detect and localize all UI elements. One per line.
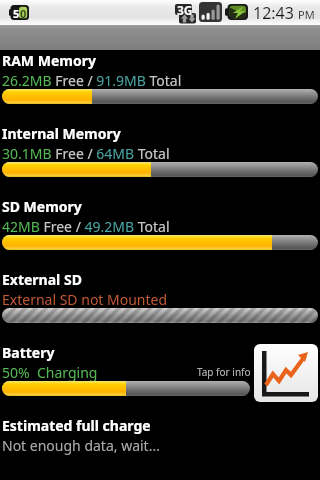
staticText: Battery <box>2 343 55 362</box>
staticText: Tap for info <box>197 365 251 379</box>
staticText: SD Memory <box>2 197 82 216</box>
staticText: 50% Charging <box>2 363 98 382</box>
staticText: 42MB Free / 49.2MB Total <box>2 217 170 236</box>
staticText: 5 <box>13 6 20 21</box>
staticText: Internal Memory <box>2 124 121 143</box>
staticText: 3G <box>177 2 193 18</box>
staticText: Not enough data, wait... <box>2 436 160 455</box>
button[interactable] <box>0 344 252 417</box>
staticText: 12:43 <box>253 2 294 24</box>
staticText: External SD not Mounted <box>2 290 168 309</box>
staticText: External SD <box>2 270 82 289</box>
staticText: Estimated full charge <box>2 416 151 435</box>
staticText: PM <box>298 7 315 22</box>
button[interactable] <box>0 125 320 198</box>
staticText: 26.2MB Free / 91.9MB Total <box>2 71 182 90</box>
staticText: RAM Memory <box>2 51 96 70</box>
button[interactable]: Battery history chart <box>254 344 318 402</box>
staticText: 30.1MB Free / 64MB Total <box>2 144 170 163</box>
button[interactable] <box>0 52 320 125</box>
button[interactable] <box>0 417 320 457</box>
button[interactable] <box>0 198 320 271</box>
staticText: 0 <box>20 6 27 21</box>
button[interactable] <box>0 271 320 344</box>
